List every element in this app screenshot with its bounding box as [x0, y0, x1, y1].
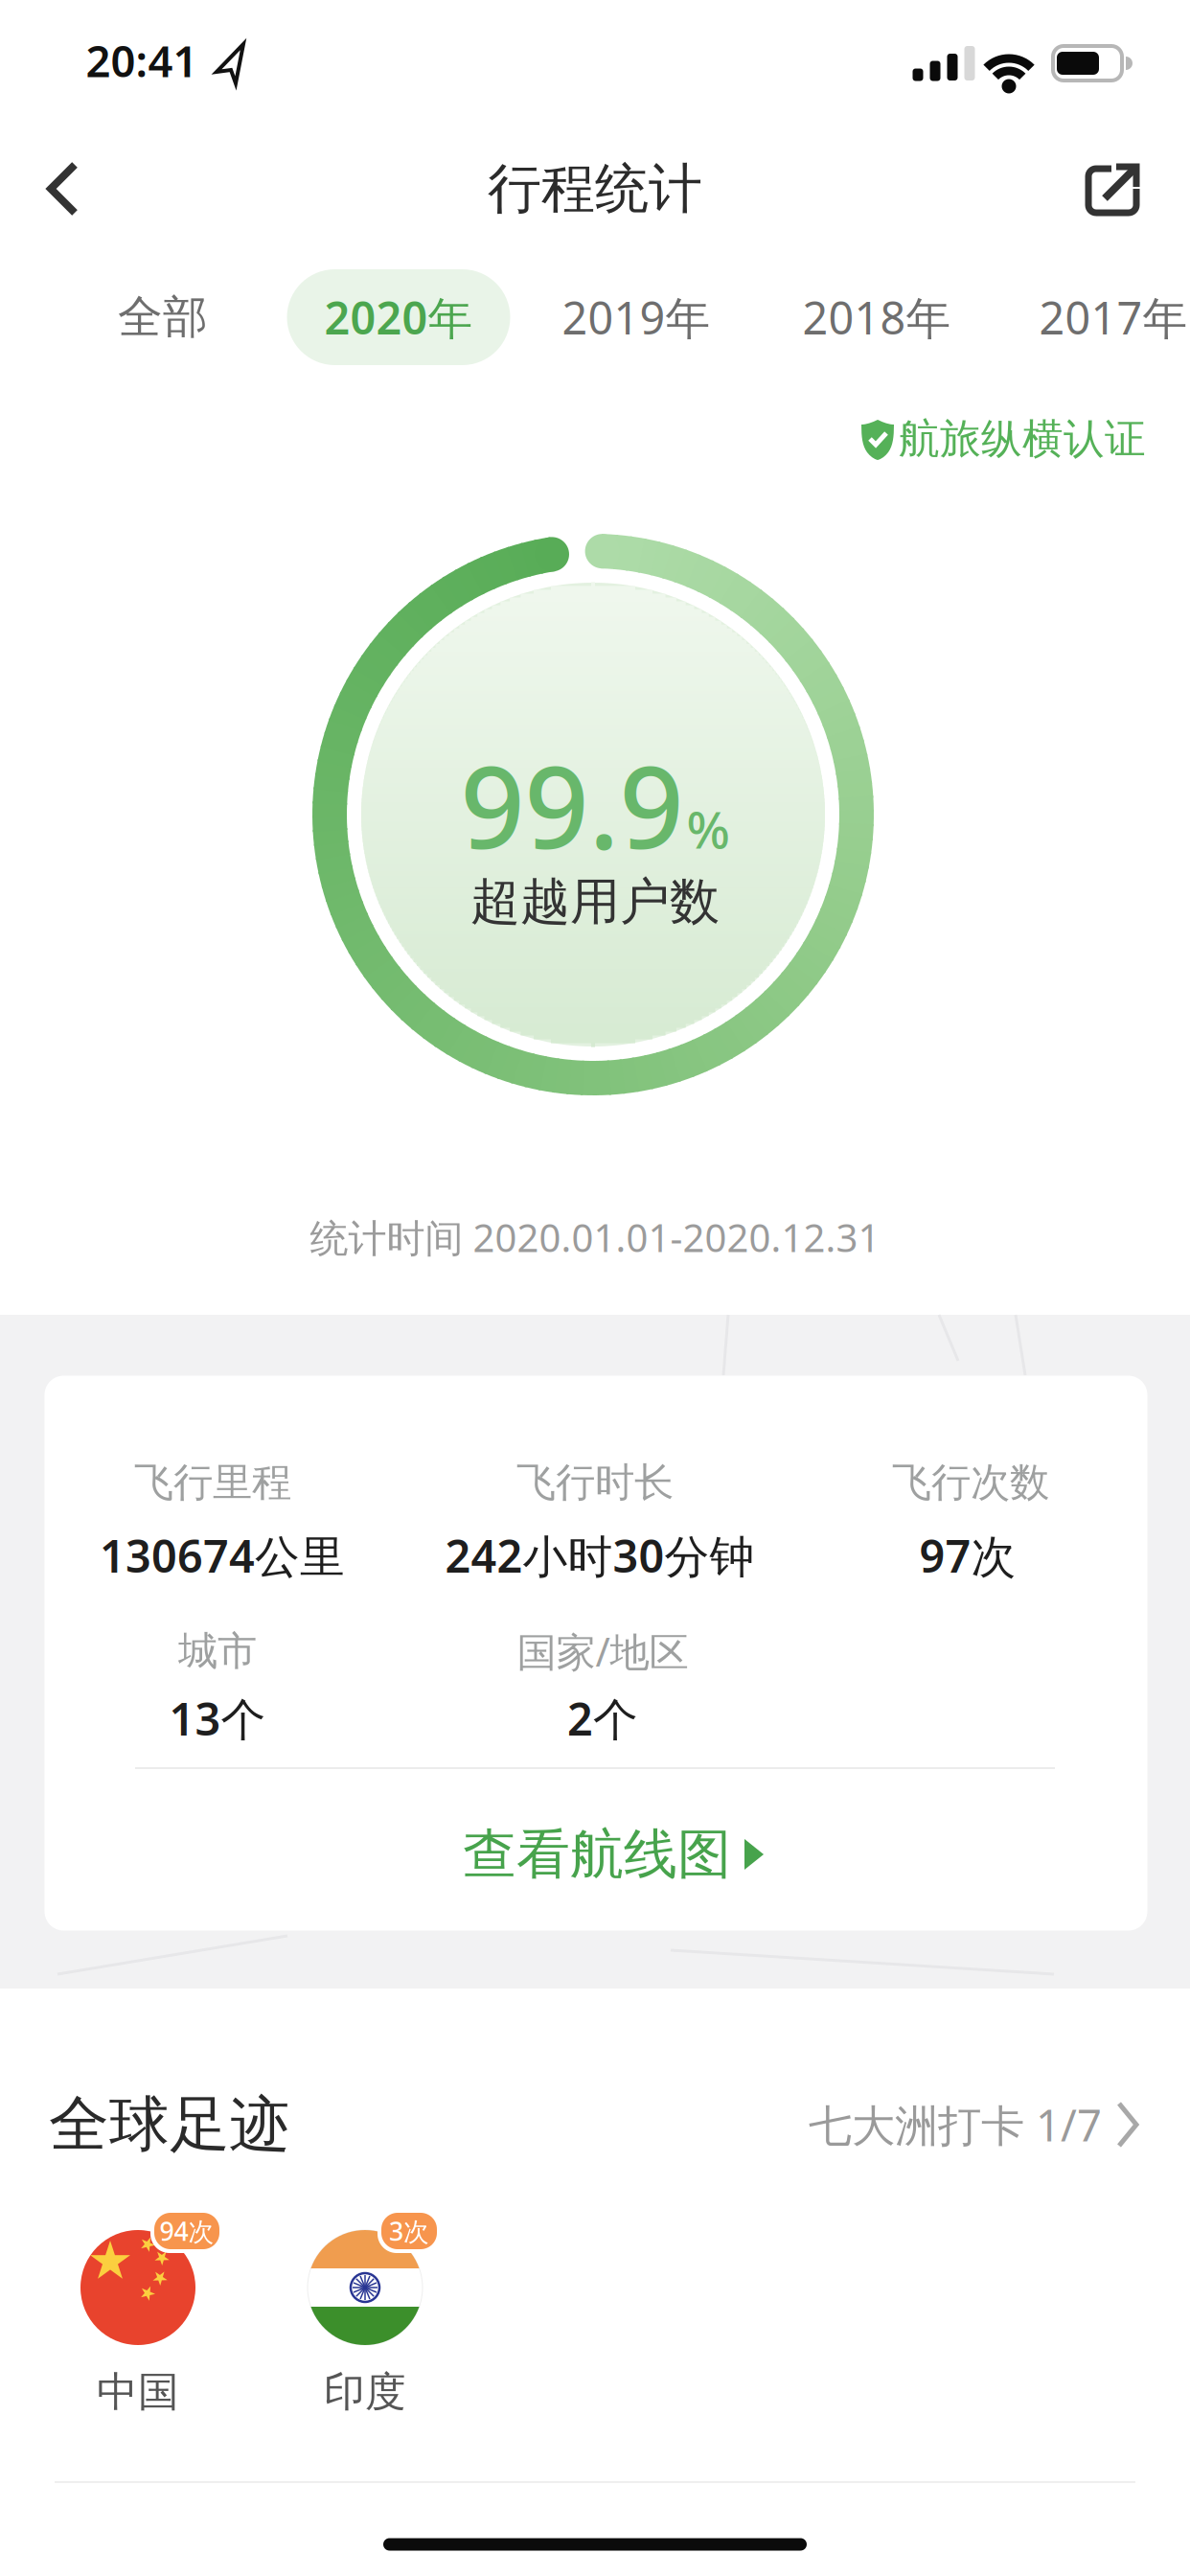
staticText: 2017年 [1039, 287, 1188, 347]
staticText: 13个 [169, 1689, 266, 1748]
staticText: 城市 [178, 1627, 257, 1676]
button[interactable]: 七大洲打卡 1/7 [809, 2081, 1138, 2168]
staticText: 2019年 [562, 287, 710, 347]
button[interactable]: 2020年 [287, 269, 510, 365]
staticText: 20:41 [86, 32, 198, 89]
button[interactable]: 2019年 [521, 269, 751, 365]
staticText: 查看航线图 [463, 1821, 731, 1887]
staticText: 航旅纵横认证 [899, 414, 1146, 464]
button[interactable]: 2017年 [998, 269, 1190, 365]
staticText: 3次 [389, 2214, 429, 2248]
staticText: 统计时间 2020.01.01-2020.12.31 [310, 1212, 880, 1263]
staticText: 行程统计 [488, 156, 702, 222]
staticText: 印度 [324, 2367, 406, 2417]
staticText: 中国 [97, 2367, 179, 2417]
staticText: 国家/地区 [517, 1625, 688, 1678]
staticText: 七大洲打卡 1/7 [809, 2096, 1102, 2153]
staticText: 2018年 [802, 287, 951, 347]
staticText: 全部 [118, 290, 208, 345]
staticText: 97次 [919, 1526, 1016, 1585]
staticText: 飞行里程 [134, 1458, 291, 1507]
staticText: 130674公里 [100, 1526, 345, 1585]
staticText: 99.9 [460, 730, 684, 880]
button[interactable]: 中国 94次 [57, 2185, 219, 2434]
button[interactable]: 印度 3次 [284, 2185, 446, 2434]
button[interactable]: 全部 [77, 269, 249, 365]
staticText: 94次 [160, 2214, 214, 2248]
staticText: 242小时30分钟 [445, 1526, 755, 1585]
staticText: 超越用户数 [470, 871, 720, 932]
staticText: 全球足迹 [49, 2088, 290, 2162]
staticText: 飞行时长 [516, 1458, 674, 1507]
button[interactable]: 查看航线图 [422, 1811, 805, 1897]
button[interactable]: 2018年 [762, 269, 992, 365]
staticText: % [687, 795, 730, 863]
staticText: 2020年 [324, 287, 473, 347]
staticText: 2个 [567, 1689, 638, 1748]
staticText: 飞行次数 [892, 1458, 1049, 1507]
